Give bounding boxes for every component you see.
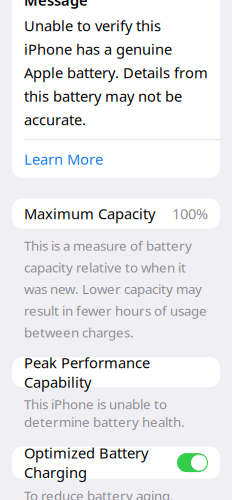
staticText: Important Battery Message <box>24 0 155 10</box>
staticText: This iPhone is unable to determine batte… <box>24 395 185 431</box>
staticText: Peak Performance Capability <box>24 353 150 392</box>
button[interactable]: Learn More <box>12 140 220 178</box>
staticText: Optimized Battery Charging <box>24 443 148 482</box>
staticText: Unable to verify this iPhone has a genui… <box>24 16 208 129</box>
button[interactable]: Optimized Battery Charging <box>12 447 220 479</box>
staticText: This is a measure of battery capacity re… <box>24 237 207 341</box>
staticText: To reduce battery aging, iPhone learns f… <box>24 487 205 500</box>
button[interactable]: Peak Performance Capability <box>12 357 220 387</box>
button[interactable]: Maximum Capacity <box>12 199 220 229</box>
staticText: 100% <box>172 204 208 223</box>
staticText: Maximum Capacity <box>24 204 155 223</box>
staticText: Learn More <box>24 149 103 169</box>
